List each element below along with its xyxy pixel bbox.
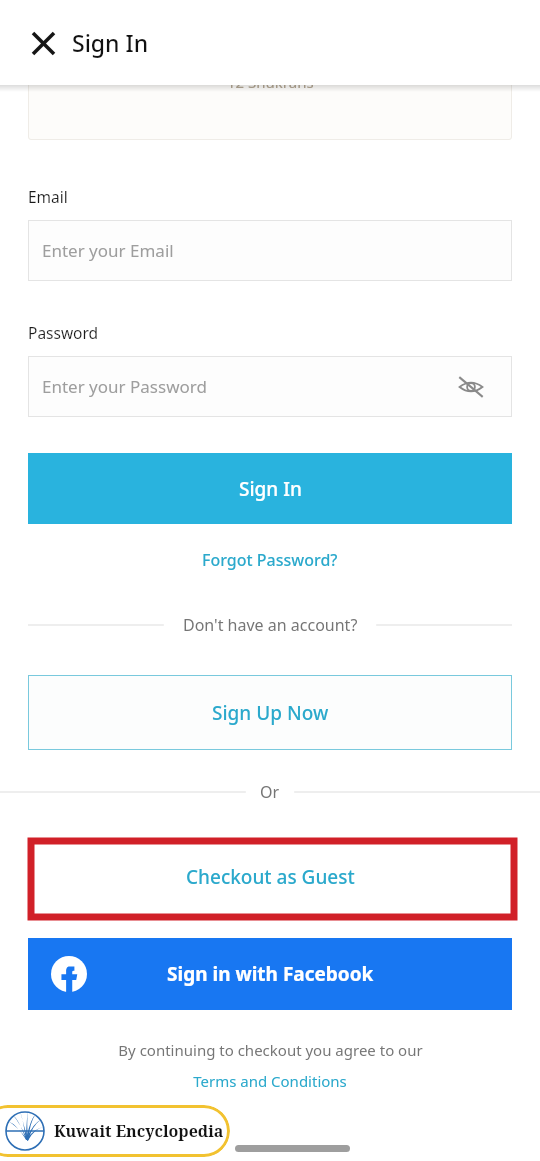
staticText: Enter your Email bbox=[42, 239, 174, 262]
staticText: Sign Up Now bbox=[212, 700, 329, 726]
staticText: Or bbox=[260, 781, 280, 803]
staticText: Kuwait Encyclopedia bbox=[54, 1120, 224, 1142]
button[interactable]: Show password bbox=[454, 370, 488, 404]
staticText: Sign In bbox=[239, 476, 302, 502]
button[interactable]: Forgot Password? bbox=[196, 545, 344, 575]
staticText: Sign In bbox=[72, 27, 149, 58]
button[interactable]: Sign Up Now bbox=[28, 675, 512, 750]
button[interactable]: Sign in with Facebook bbox=[28, 938, 512, 1010]
staticText: Terms and Conditions bbox=[193, 1071, 347, 1091]
staticText: Sign in with Facebook bbox=[167, 961, 374, 987]
button[interactable]: Checkout as Guest bbox=[31, 841, 509, 912]
button[interactable]: Enter your Password bbox=[28, 356, 512, 417]
staticText: Don't have an account? bbox=[183, 614, 358, 636]
button[interactable]: Close bbox=[22, 22, 64, 64]
staticText: By continuing to checkout you agree to o… bbox=[118, 1040, 423, 1060]
staticText: Enter your Password bbox=[42, 375, 207, 398]
button[interactable]: Sign In bbox=[28, 453, 512, 524]
staticText: Forgot Password? bbox=[202, 549, 338, 571]
staticText: Email bbox=[28, 186, 68, 207]
button[interactable]: Enter your Email bbox=[28, 220, 512, 281]
button[interactable]: Terms and Conditions bbox=[189, 1069, 351, 1093]
staticText: Checkout as Guest bbox=[186, 864, 355, 890]
staticText: 12 Shukrans bbox=[227, 72, 314, 92]
staticText: Password bbox=[28, 322, 99, 343]
